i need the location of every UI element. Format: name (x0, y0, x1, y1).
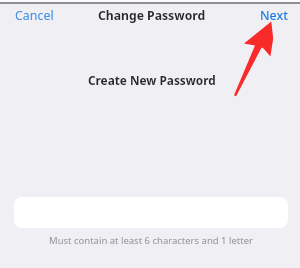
other: Arrow pointing to Next (232, 18, 277, 100)
button[interactable]: Next (254, 2, 294, 29)
button[interactable]: Cancel (9, 2, 60, 29)
staticText: Change Password (98, 7, 206, 24)
staticText: Must contain at least 6 characters and 1… (49, 234, 253, 247)
staticText: Create New Password (88, 72, 216, 88)
staticText: Cancel (15, 7, 54, 24)
staticText: Next (260, 7, 288, 24)
